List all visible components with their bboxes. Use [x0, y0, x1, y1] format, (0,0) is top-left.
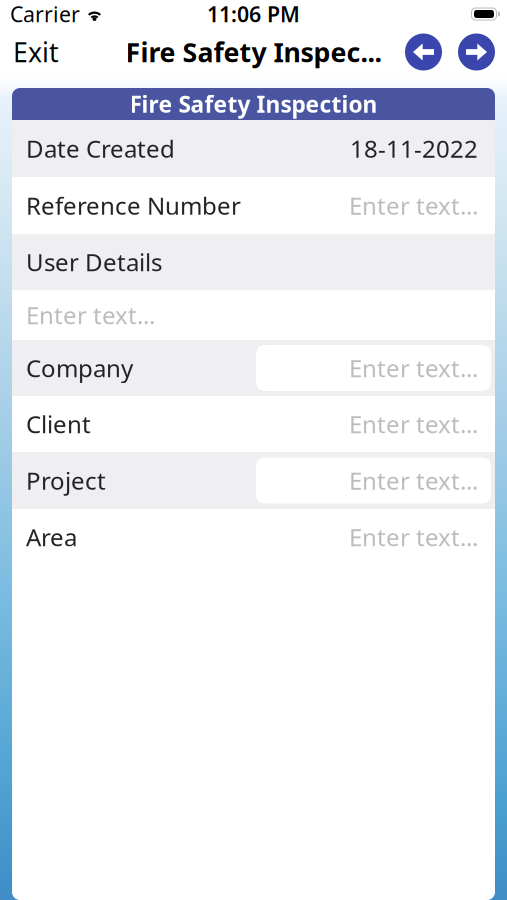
staticText: Fire Safety Inspection [129, 89, 377, 119]
button[interactable]: Exit [13, 34, 59, 70]
staticText: Enter text... [349, 190, 478, 221]
staticText: Enter text... [349, 352, 478, 384]
button[interactable]: Enter text... [12, 290, 495, 340]
staticText: Enter text... [349, 465, 478, 496]
staticText: Enter text... [26, 299, 155, 331]
button[interactable]: Previous [405, 33, 442, 70]
staticText: 18-11-2022 [350, 133, 478, 164]
button[interactable]: Client [12, 396, 495, 452]
staticText: Project [26, 465, 106, 496]
button[interactable]: Date Created [12, 120, 495, 177]
staticText: Company [26, 352, 133, 384]
staticText: Area [26, 521, 77, 553]
staticText: Enter text... [349, 521, 478, 553]
button[interactable]: Project [12, 452, 495, 509]
staticText: 11:06 PM [207, 0, 300, 28]
staticText: Enter text... [349, 408, 478, 440]
button[interactable]: Next [458, 33, 495, 70]
staticText: Carrier [10, 0, 80, 28]
staticText: Reference Number [26, 190, 241, 221]
button[interactable]: Area [12, 509, 495, 565]
staticText: Date Created [26, 133, 175, 164]
staticText: Client [26, 408, 91, 440]
button[interactable]: Reference Number [12, 177, 495, 234]
button[interactable]: Company [12, 340, 495, 396]
staticText: Fire Safety Inspec... [125, 34, 381, 70]
staticText: Exit [13, 34, 59, 70]
staticText: User Details [26, 246, 162, 278]
